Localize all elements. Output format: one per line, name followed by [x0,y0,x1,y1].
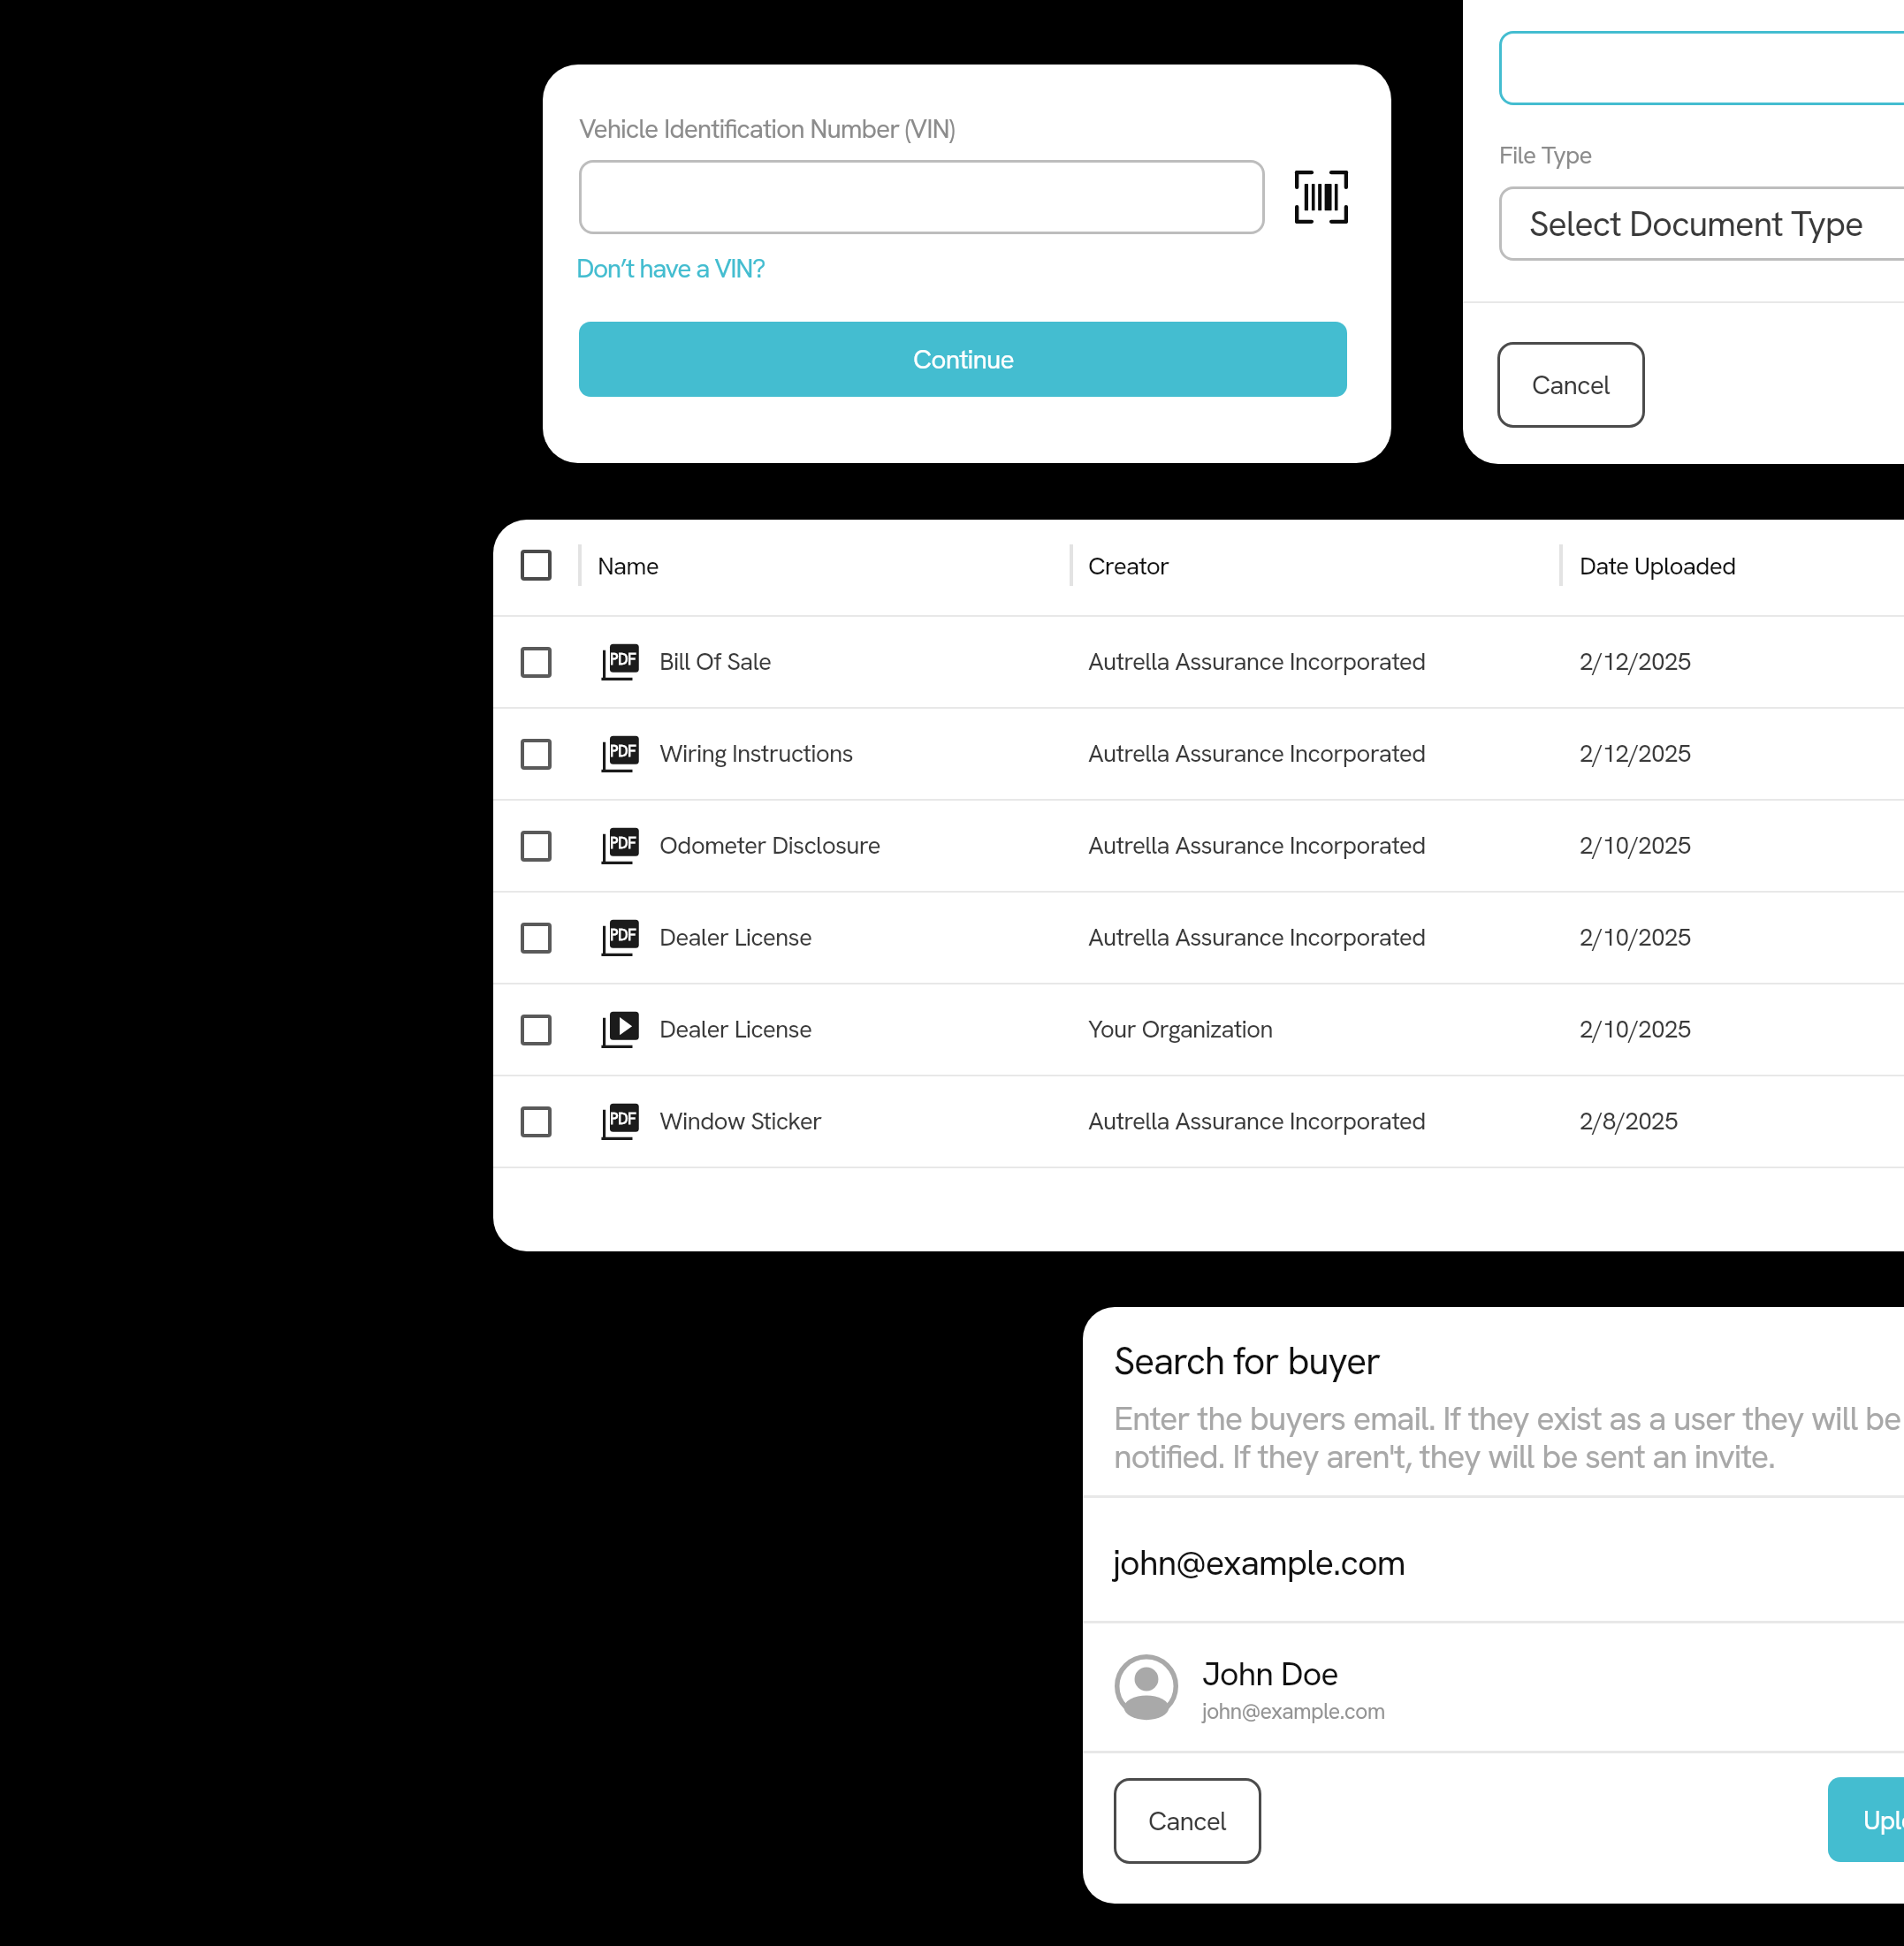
staticText: Date Uploaded [1580,550,1736,582]
button[interactable]: Select Odometer Disclosure [521,831,552,862]
button[interactable]: Select Dealer License [493,984,1904,1075]
staticText: PDF [610,741,636,761]
button[interactable]: Upload [1828,1777,1904,1862]
button[interactable]: Cancel [1114,1778,1261,1864]
staticText: Upload [1863,1803,1904,1837]
staticText: Bill Of Sale [659,645,772,677]
staticText: John Doe [1202,1652,1338,1696]
staticText: Cancel [1532,368,1611,402]
staticText: Search for buyer [1114,1336,1381,1386]
staticText: Name [598,550,659,582]
button[interactable]: Vehicle Identification Number input [579,160,1265,234]
staticText: Autrella Assurance Incorporated [1088,645,1426,677]
staticText: Autrella Assurance Incorporated [1088,829,1426,861]
staticText: Autrella Assurance Incorporated [1088,921,1426,953]
staticText: Cancel [1148,1804,1227,1838]
staticText: 2/12/2025 [1580,645,1691,677]
staticText: john@example.com [1202,1697,1385,1726]
staticText: Autrella Assurance Incorporated [1088,737,1426,769]
staticText: PDF [610,833,636,853]
staticText: Your Organization [1088,1013,1273,1045]
button[interactable]: john@example.com [1083,1498,1904,1621]
staticText: Odometer Disclosure [659,829,880,861]
button[interactable]: Select Dealer License [521,923,552,954]
staticText: 2/10/2025 [1580,829,1691,861]
staticText: Dealer License [659,1013,812,1045]
button[interactable]: Select all documents [521,550,552,581]
staticText: 2/10/2025 [1580,921,1691,953]
button[interactable]: John Doe [1083,1623,1904,1751]
staticText: Autrella Assurance Incorporated [1088,1105,1426,1136]
button[interactable]: Select Odometer Disclosure [493,801,1904,891]
staticText: Select Document Type [1529,201,1863,247]
staticText: 2/8/2025 [1580,1105,1678,1136]
staticText: Continue [913,342,1014,376]
staticText: File Type [1499,139,1592,171]
staticText: PDF [610,650,636,669]
staticText: Creator [1088,550,1169,582]
button[interactable]: Scan VIN barcode [1295,171,1348,224]
button[interactable]: Select Window Sticker [493,1076,1904,1167]
button[interactable]: File name input [1499,31,1904,105]
staticText: Window Sticker [659,1105,822,1136]
staticText: Don’t have a VIN? [576,251,765,285]
button[interactable]: Cancel [1497,342,1645,428]
button[interactable]: Select Wiring Instructions [521,739,552,770]
button[interactable]: Select Dealer License [521,1015,552,1045]
staticText: Vehicle Identification Number (VIN) [579,111,955,146]
button[interactable]: Select Dealer License [493,893,1904,983]
button[interactable]: Don’t have a VIN? [576,251,765,285]
button[interactable]: Select Wiring Instructions [493,709,1904,799]
staticText: PDF [610,925,636,945]
staticText: Enter the buyers email. If they exist as… [1114,1396,1901,1478]
button[interactable]: Select Window Sticker [521,1106,552,1137]
button[interactable]: Select Document Type [1499,186,1904,261]
staticText: PDF [610,1109,636,1129]
button[interactable]: Select Bill Of Sale [521,647,552,678]
staticText: 2/10/2025 [1580,1013,1691,1045]
button[interactable]: Continue [579,322,1347,397]
staticText: Wiring Instructions [659,737,853,769]
button[interactable]: Select Bill Of Sale [493,617,1904,707]
staticText: Dealer License [659,921,812,953]
staticText: john@example.com [1113,1539,1405,1585]
staticText: 2/12/2025 [1580,737,1691,769]
